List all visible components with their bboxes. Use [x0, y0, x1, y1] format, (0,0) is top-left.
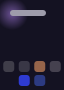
button[interactable]: App: [18, 61, 30, 72]
button[interactable]: App: [18, 75, 30, 86]
button[interactable]: Search: [0, 10, 64, 16]
button[interactable]: App: [49, 61, 61, 72]
button[interactable]: App: [34, 75, 45, 86]
button[interactable]: App: [3, 61, 14, 72]
button[interactable]: App: [34, 61, 45, 72]
